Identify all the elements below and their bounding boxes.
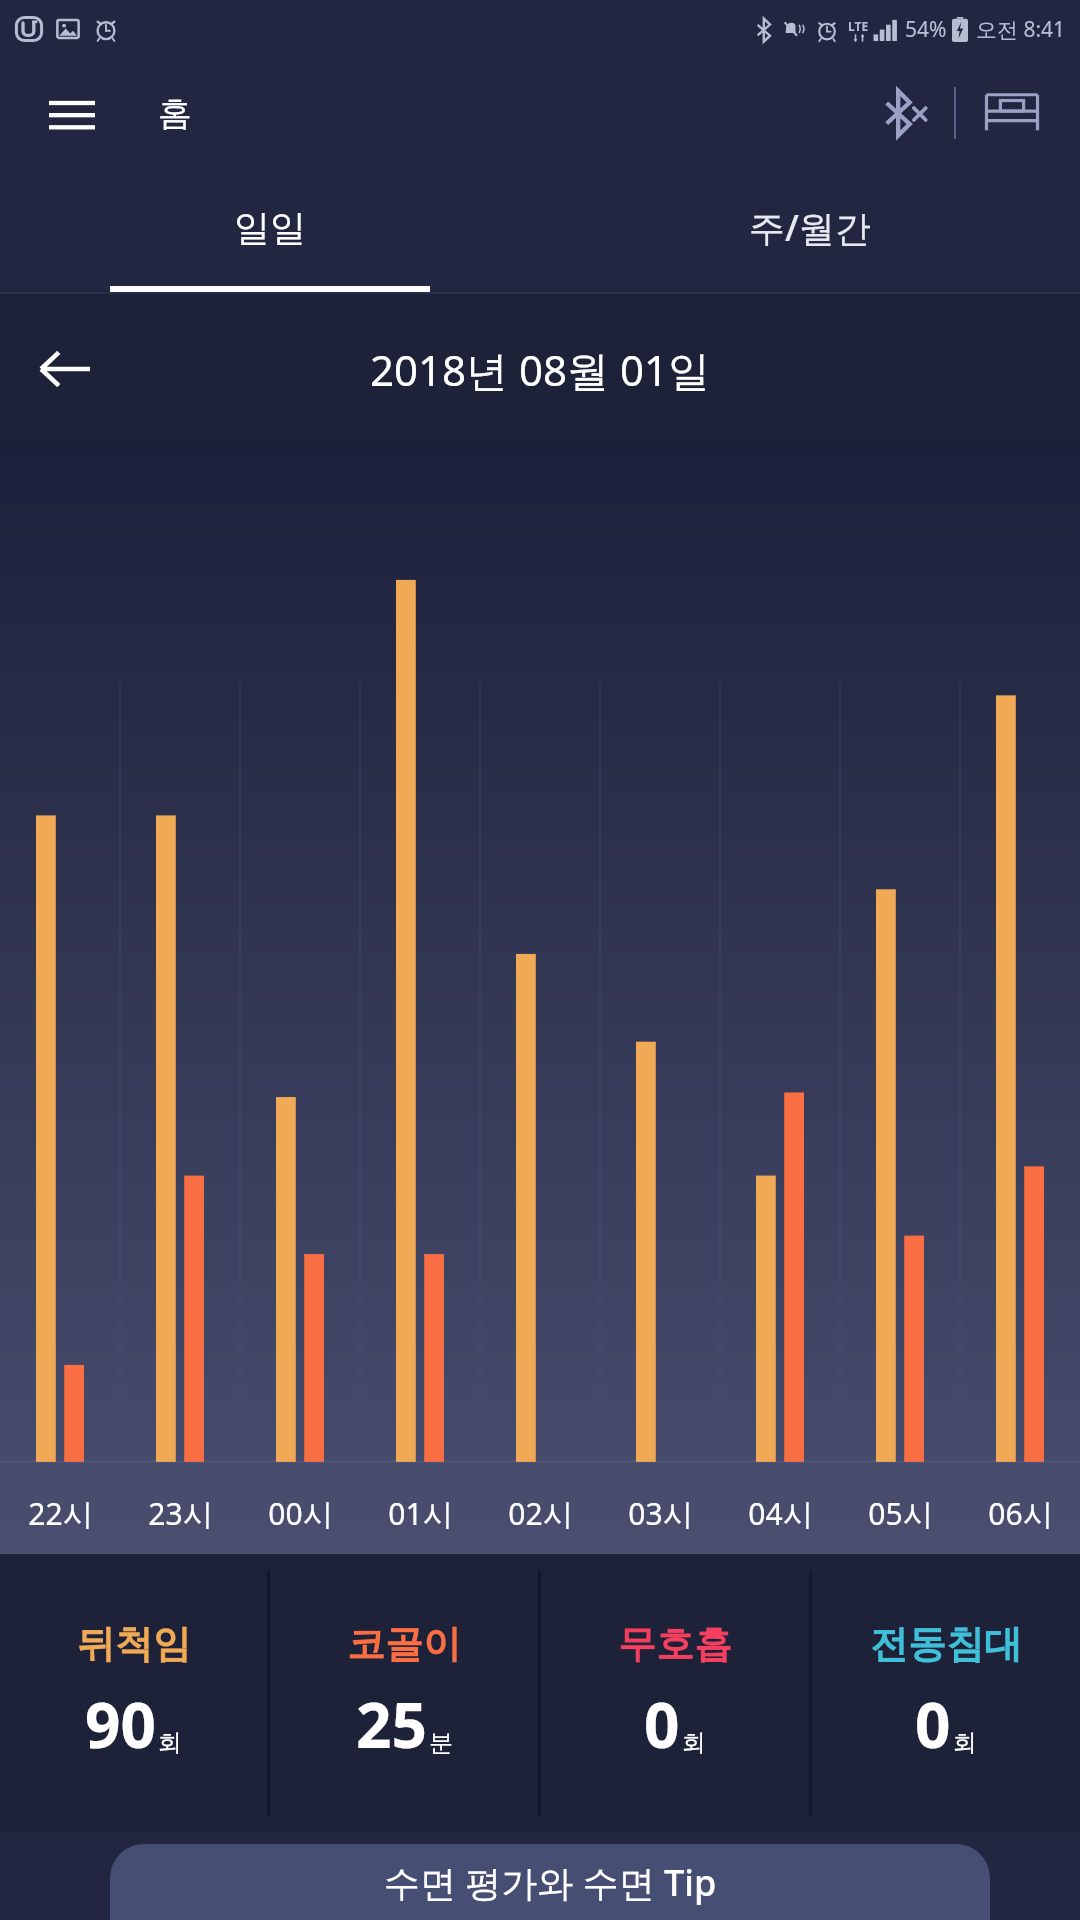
staticText: 수면 평가와 수면 Tip [384, 1858, 717, 1907]
staticText: 02시 [508, 1493, 573, 1534]
staticText: 홈 [158, 92, 192, 135]
button[interactable]: 블루투스 연결 안됨 [870, 77, 942, 149]
staticText: 06시 [988, 1493, 1053, 1534]
button[interactable]: 수면 평가와 수면 Tip [110, 1844, 990, 1920]
staticText: 25 [356, 1682, 427, 1766]
staticText: 01시 [388, 1493, 453, 1534]
staticText: 03시 [628, 1493, 693, 1534]
staticText: 무호흡 [618, 1620, 732, 1668]
button[interactable]: 침대 [976, 77, 1048, 149]
staticText: 0 [644, 1682, 680, 1766]
staticText: 오전 8:41 [976, 15, 1066, 44]
staticText: LTE [848, 18, 869, 34]
staticText: 05시 [868, 1493, 933, 1534]
staticText: 22시 [28, 1493, 93, 1534]
staticText: 00시 [268, 1493, 333, 1534]
button[interactable]: 전동침대 [812, 1554, 1080, 1832]
button[interactable]: 코골이 [270, 1554, 538, 1832]
button[interactable]: 주/월간 [540, 168, 1080, 286]
staticText: 일일 [234, 205, 306, 250]
staticText: 회 [158, 1728, 182, 1758]
staticText: 회 [953, 1728, 977, 1758]
staticText: 전동침대 [870, 1620, 1022, 1668]
staticText: 뒤척임 [77, 1620, 191, 1668]
staticText: 0 [915, 1682, 951, 1766]
staticText: 2018년 08월 01일 [370, 341, 711, 398]
button[interactable]: 이전 날짜 [26, 331, 102, 407]
staticText: 주/월간 [749, 203, 871, 252]
button[interactable]: 일일 [0, 168, 540, 286]
staticText: 90 [85, 1682, 156, 1766]
staticText: 04시 [748, 1493, 813, 1534]
staticText: 23시 [148, 1493, 213, 1534]
staticText: 54% [905, 15, 947, 44]
button[interactable]: 무호흡 [541, 1554, 809, 1832]
button[interactable]: 뒤척임 [0, 1554, 267, 1832]
button[interactable]: 메뉴 [44, 85, 100, 141]
staticText: 코골이 [347, 1620, 461, 1668]
staticText: 회 [682, 1728, 706, 1758]
staticText: 분 [429, 1728, 453, 1758]
